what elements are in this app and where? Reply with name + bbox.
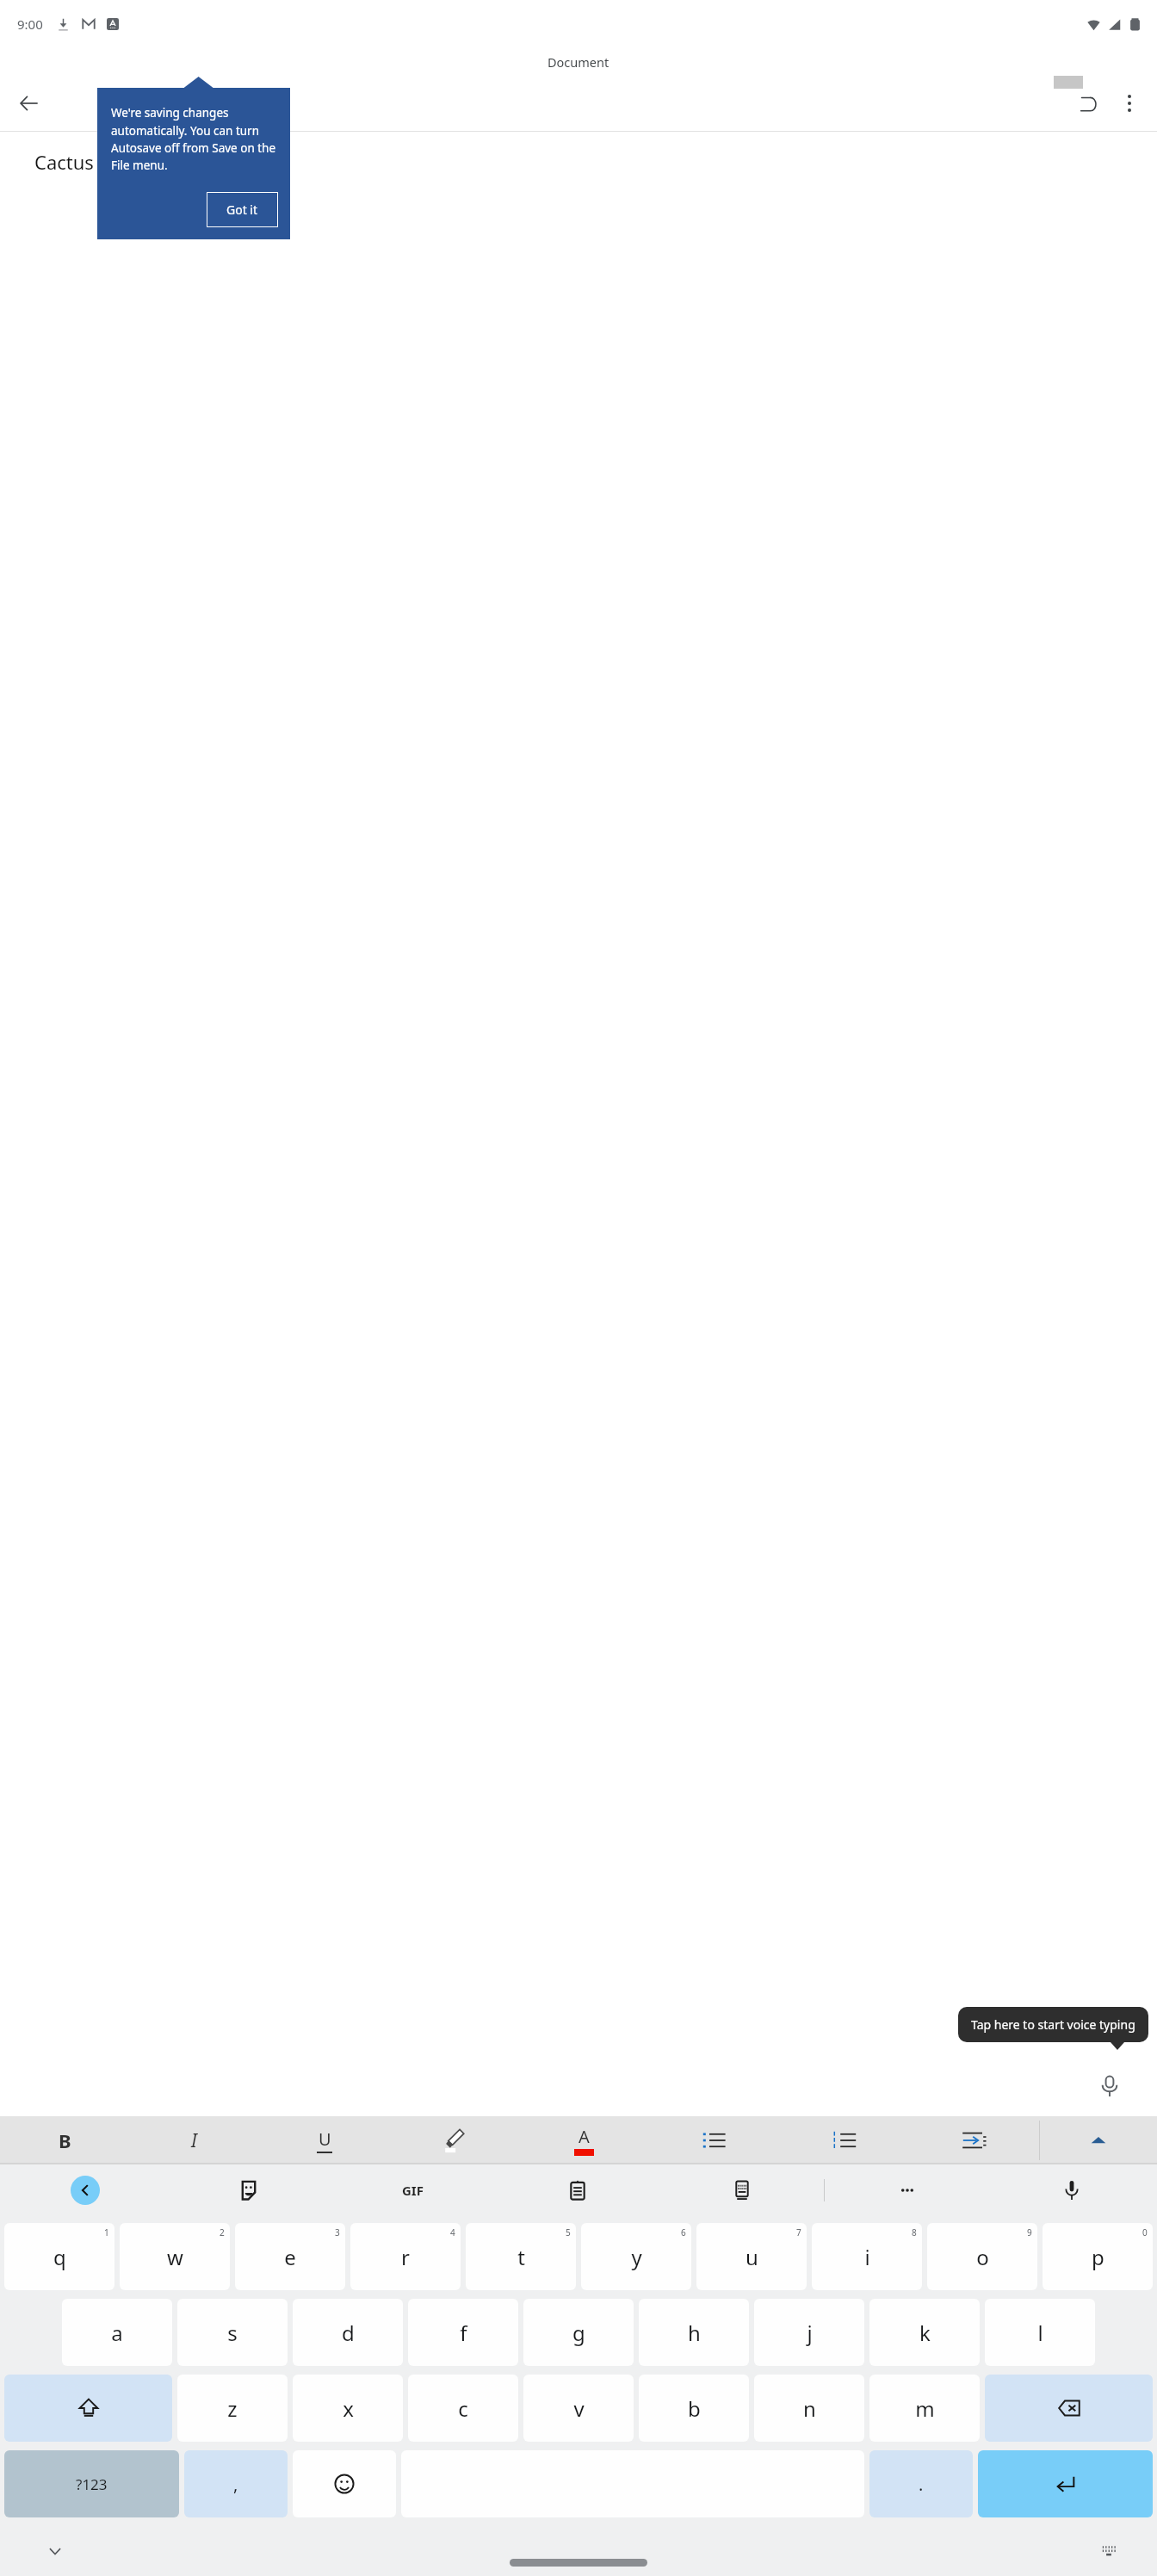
button[interactable]: Emoji [293, 2450, 396, 2517]
button[interactable]: A [519, 2116, 649, 2164]
staticText: 2 [220, 2226, 225, 2239]
staticText: 9:00 [17, 15, 43, 33]
button[interactable]: i [812, 2223, 922, 2290]
staticText: t [517, 2243, 525, 2271]
button[interactable]: t [466, 2223, 576, 2290]
button[interactable]: p [1043, 2223, 1153, 2290]
button[interactable] [389, 2116, 519, 2164]
staticText: c [458, 2394, 468, 2423]
button[interactable]: b [639, 2375, 749, 2442]
button[interactable]: c [408, 2375, 518, 2442]
button[interactable]: I [129, 2116, 259, 2164]
staticText: Document [548, 53, 609, 71]
button[interactable]: y [581, 2223, 691, 2290]
button[interactable]: q [4, 2223, 114, 2290]
button[interactable]: k [869, 2299, 980, 2366]
staticText: d [342, 2319, 355, 2347]
button[interactable]: r [350, 2223, 461, 2290]
staticText: y [631, 2243, 642, 2271]
staticText: h [688, 2319, 701, 2347]
staticText: j [807, 2319, 813, 2347]
button[interactable] [779, 2116, 909, 2164]
button[interactable]: e [235, 2223, 345, 2290]
staticText: g [572, 2319, 585, 2347]
button[interactable]: v [523, 2375, 634, 2442]
button[interactable]: x [293, 2375, 403, 2442]
staticText: u [746, 2243, 758, 2271]
button[interactable]: Shift [4, 2375, 172, 2442]
button[interactable]: GIF [331, 2164, 495, 2216]
button[interactable]: o [927, 2223, 1037, 2290]
staticText: m [915, 2394, 935, 2423]
button[interactable]: u [696, 2223, 807, 2290]
staticText: q [53, 2243, 66, 2271]
staticText: , [233, 2473, 238, 2496]
button[interactable] [909, 2116, 1039, 2164]
button[interactable]: Keyboard settings [659, 2164, 824, 2216]
staticText: 5 [566, 2226, 571, 2239]
staticText: i [864, 2243, 870, 2271]
staticText: 4 [450, 2226, 455, 2239]
button[interactable]: m [869, 2375, 980, 2442]
button[interactable]: f [408, 2299, 518, 2366]
button[interactable]: l [985, 2299, 1095, 2366]
button[interactable]: Stickers [167, 2164, 331, 2216]
button[interactable]: . [869, 2450, 973, 2517]
staticText: v [573, 2394, 585, 2423]
button[interactable]: Got it [207, 192, 278, 227]
button[interactable]: , [184, 2450, 288, 2517]
staticText: Cactus [34, 149, 94, 175]
staticText: 9 [1027, 2226, 1032, 2239]
button[interactable]: Back [3, 2164, 167, 2216]
staticText: k [919, 2319, 931, 2347]
button[interactable]: More options [1109, 83, 1150, 124]
staticText: We're saving changes automatically. You … [111, 105, 278, 173]
button[interactable]: B [0, 2116, 129, 2164]
button[interactable]: g [523, 2299, 634, 2366]
button[interactable]: w [120, 2223, 230, 2290]
staticText: l [1037, 2319, 1043, 2347]
staticText: GIF [402, 2182, 424, 2199]
staticText: Got it [226, 201, 258, 218]
staticText: p [1092, 2243, 1104, 2271]
button[interactable]: Switch keyboard [1092, 2534, 1126, 2568]
staticText: b [688, 2394, 701, 2423]
staticText: o [976, 2243, 989, 2271]
button[interactable]: j [754, 2299, 864, 2366]
button[interactable]: n [754, 2375, 864, 2442]
staticText: Tap here to start voice typing [971, 2016, 1135, 2033]
button[interactable]: Hide keyboard [38, 2534, 72, 2568]
button[interactable] [1040, 2116, 1157, 2164]
button[interactable]: d [293, 2299, 403, 2366]
button[interactable]: s [177, 2299, 288, 2366]
button[interactable]: Back [9, 83, 50, 124]
staticText: 1 [104, 2226, 109, 2239]
button[interactable] [649, 2116, 779, 2164]
staticText: a [111, 2319, 123, 2347]
button[interactable]: Redo [1067, 83, 1109, 124]
staticText: A [578, 2125, 590, 2148]
staticText: x [343, 2394, 354, 2423]
button[interactable]: h [639, 2299, 749, 2366]
button[interactable]: More options [825, 2164, 989, 2216]
button[interactable]: Start voice typing [1083, 2059, 1136, 2113]
button[interactable]: a [62, 2299, 172, 2366]
staticText: 8 [912, 2226, 917, 2239]
button[interactable]: Tap here to start voice typing [958, 2007, 1148, 2042]
staticText: e [284, 2243, 296, 2271]
button[interactable]: ?123 [4, 2450, 179, 2517]
staticText: 0 [1142, 2226, 1148, 2239]
staticText: 3 [335, 2226, 340, 2239]
button[interactable]: Voice input [989, 2164, 1154, 2216]
staticText: r [401, 2243, 410, 2271]
staticText: z [227, 2394, 238, 2423]
button[interactable]: Clipboard [495, 2164, 659, 2216]
button[interactable]: We're saving changes automatically. You … [97, 88, 290, 239]
button[interactable]: Backspace [985, 2375, 1153, 2442]
staticText: w [167, 2243, 183, 2271]
staticText: I [191, 2128, 197, 2153]
button[interactable]: z [177, 2375, 288, 2442]
button[interactable]: Enter [978, 2450, 1153, 2517]
button[interactable]: U [259, 2116, 389, 2164]
